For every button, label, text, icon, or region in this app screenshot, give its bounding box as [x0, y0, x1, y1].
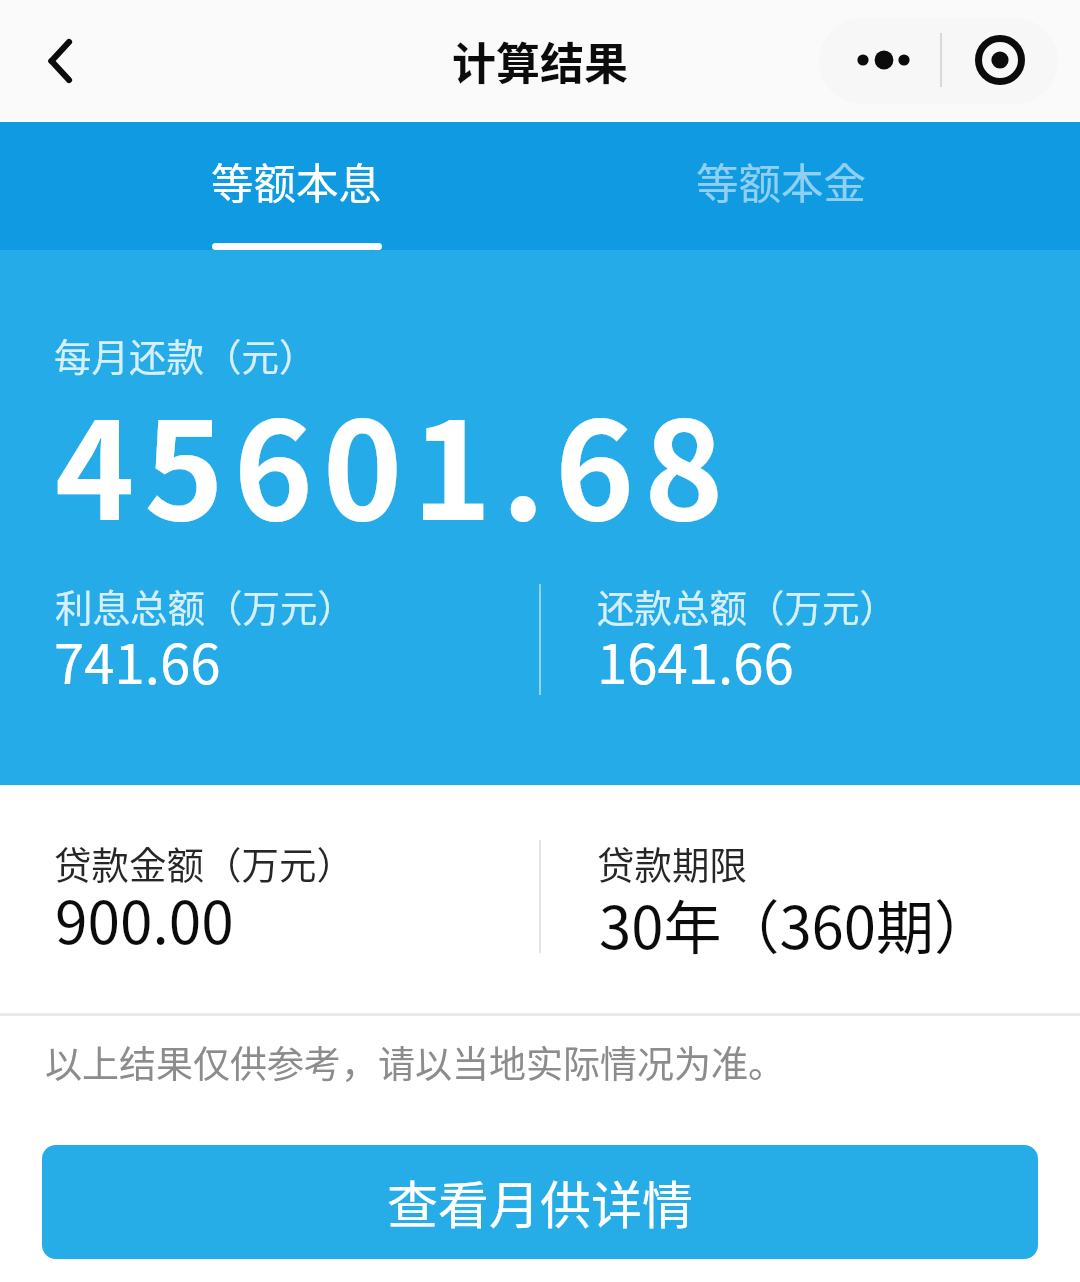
button[interactable]: 等额本息	[0, 122, 540, 250]
staticText: 贷款期限	[597, 835, 747, 889]
staticText: 每月还款（元）	[54, 327, 317, 381]
button[interactable]: Back	[0, 0, 110, 122]
staticText: 以上结果仅供参考，请以当地实际情况为准。	[45, 1035, 785, 1089]
staticText: 贷款金额（万元）	[54, 835, 354, 889]
staticText: 等额本息	[211, 150, 382, 212]
staticText: 查看月供详情	[387, 1165, 694, 1239]
staticText: 1641.66	[597, 621, 794, 700]
staticText: 30年（360期）	[599, 882, 992, 966]
button[interactable]: More options	[819, 18, 940, 104]
staticText: 利息总额（万元）	[55, 578, 355, 632]
button[interactable]: 等额本金	[540, 122, 1080, 250]
staticText: 741.66	[54, 621, 221, 700]
staticText: 900.00	[55, 876, 234, 961]
button[interactable]: 查看月供详情	[42, 1145, 1038, 1259]
staticText: 计算结果	[452, 29, 628, 93]
staticText: 等额本金	[696, 150, 867, 212]
staticText: 45601.68	[55, 363, 734, 558]
button[interactable]: Close mini program	[942, 18, 1058, 104]
staticText: 还款总额（万元）	[597, 578, 897, 632]
